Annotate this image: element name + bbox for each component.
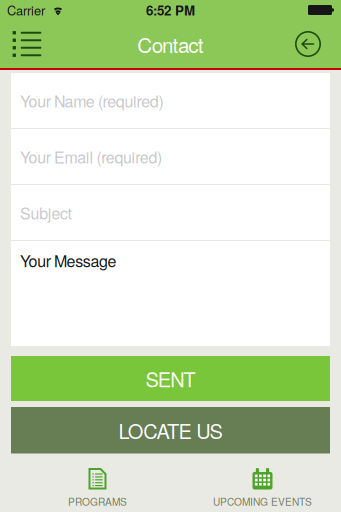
staticText: Subject <box>20 201 72 224</box>
staticText: Contact <box>137 29 204 59</box>
staticText: 6:52 PM <box>146 0 195 20</box>
staticText: LOCATE US <box>118 416 223 444</box>
staticText: Carrier <box>7 1 45 19</box>
button[interactable]: PROGRAMS <box>26 454 169 512</box>
button[interactable]: SENT <box>11 356 330 401</box>
staticText: Your Name (required) <box>20 89 163 112</box>
button[interactable]: UPCOMING EVENTS <box>191 454 334 512</box>
staticText: UPCOMING EVENTS <box>213 494 312 508</box>
staticText: Your Email (required) <box>20 145 162 168</box>
button[interactable]: Back <box>286 20 330 68</box>
button[interactable]: LOCATE US <box>11 407 330 453</box>
button[interactable]: Menu <box>5 20 49 68</box>
staticText: SENT <box>145 364 196 393</box>
staticText: PROGRAMS <box>68 494 127 508</box>
staticText: Your Message <box>20 249 117 272</box>
